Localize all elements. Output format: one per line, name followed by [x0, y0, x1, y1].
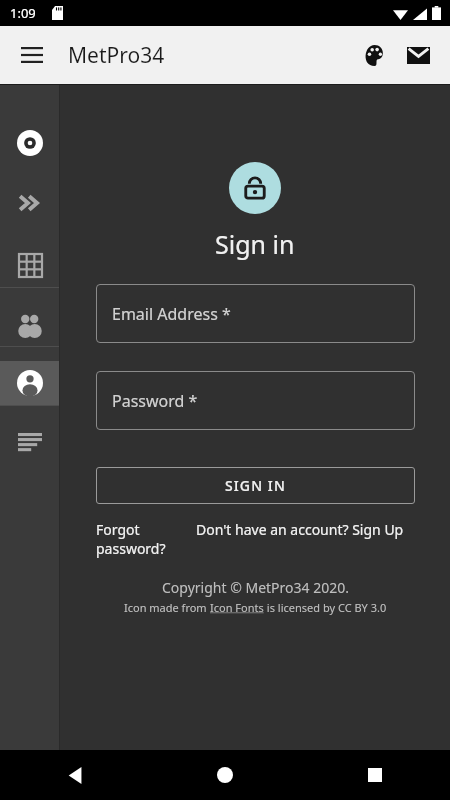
- staticText: Don't have an account? Sign Up: [196, 520, 404, 539]
- button[interactable]: Back: [0, 750, 150, 800]
- staticText: is licensed by CC BY 3.0: [264, 600, 387, 615]
- staticText: MetPro34: [68, 41, 165, 70]
- staticText: Password *: [112, 390, 198, 412]
- button[interactable]: Record: [0, 121, 60, 165]
- button[interactable]: Icon Fonts: [210, 600, 264, 615]
- button[interactable]: Forward: [0, 181, 60, 225]
- button[interactable]: Messages: [396, 33, 440, 77]
- button[interactable]: Don't have an account? Sign Up: [196, 520, 415, 539]
- staticText: Icon made from: [124, 600, 210, 615]
- button[interactable]: Articles: [0, 420, 60, 464]
- button[interactable]: Grid: [0, 243, 60, 287]
- staticText: Copyright © MetPro34 2020.: [162, 578, 349, 597]
- staticText: Email Address *: [112, 303, 231, 325]
- button[interactable]: People: [0, 302, 60, 346]
- button[interactable]: Password *: [96, 371, 415, 430]
- staticText: 1:09: [10, 4, 36, 22]
- button[interactable]: Menu: [8, 31, 56, 79]
- staticText: Sign in: [215, 227, 295, 261]
- staticText: SIGN IN: [225, 476, 286, 495]
- button[interactable]: SIGN IN: [96, 467, 415, 504]
- button[interactable]: Account: [0, 361, 60, 405]
- button[interactable]: Recents: [300, 750, 450, 800]
- button[interactable]: Home: [150, 750, 300, 800]
- staticText: Forgot password?: [96, 520, 196, 558]
- button[interactable]: Email Address *: [96, 284, 415, 343]
- button[interactable]: Theme: [352, 33, 396, 77]
- button[interactable]: Forgot password?: [96, 520, 196, 558]
